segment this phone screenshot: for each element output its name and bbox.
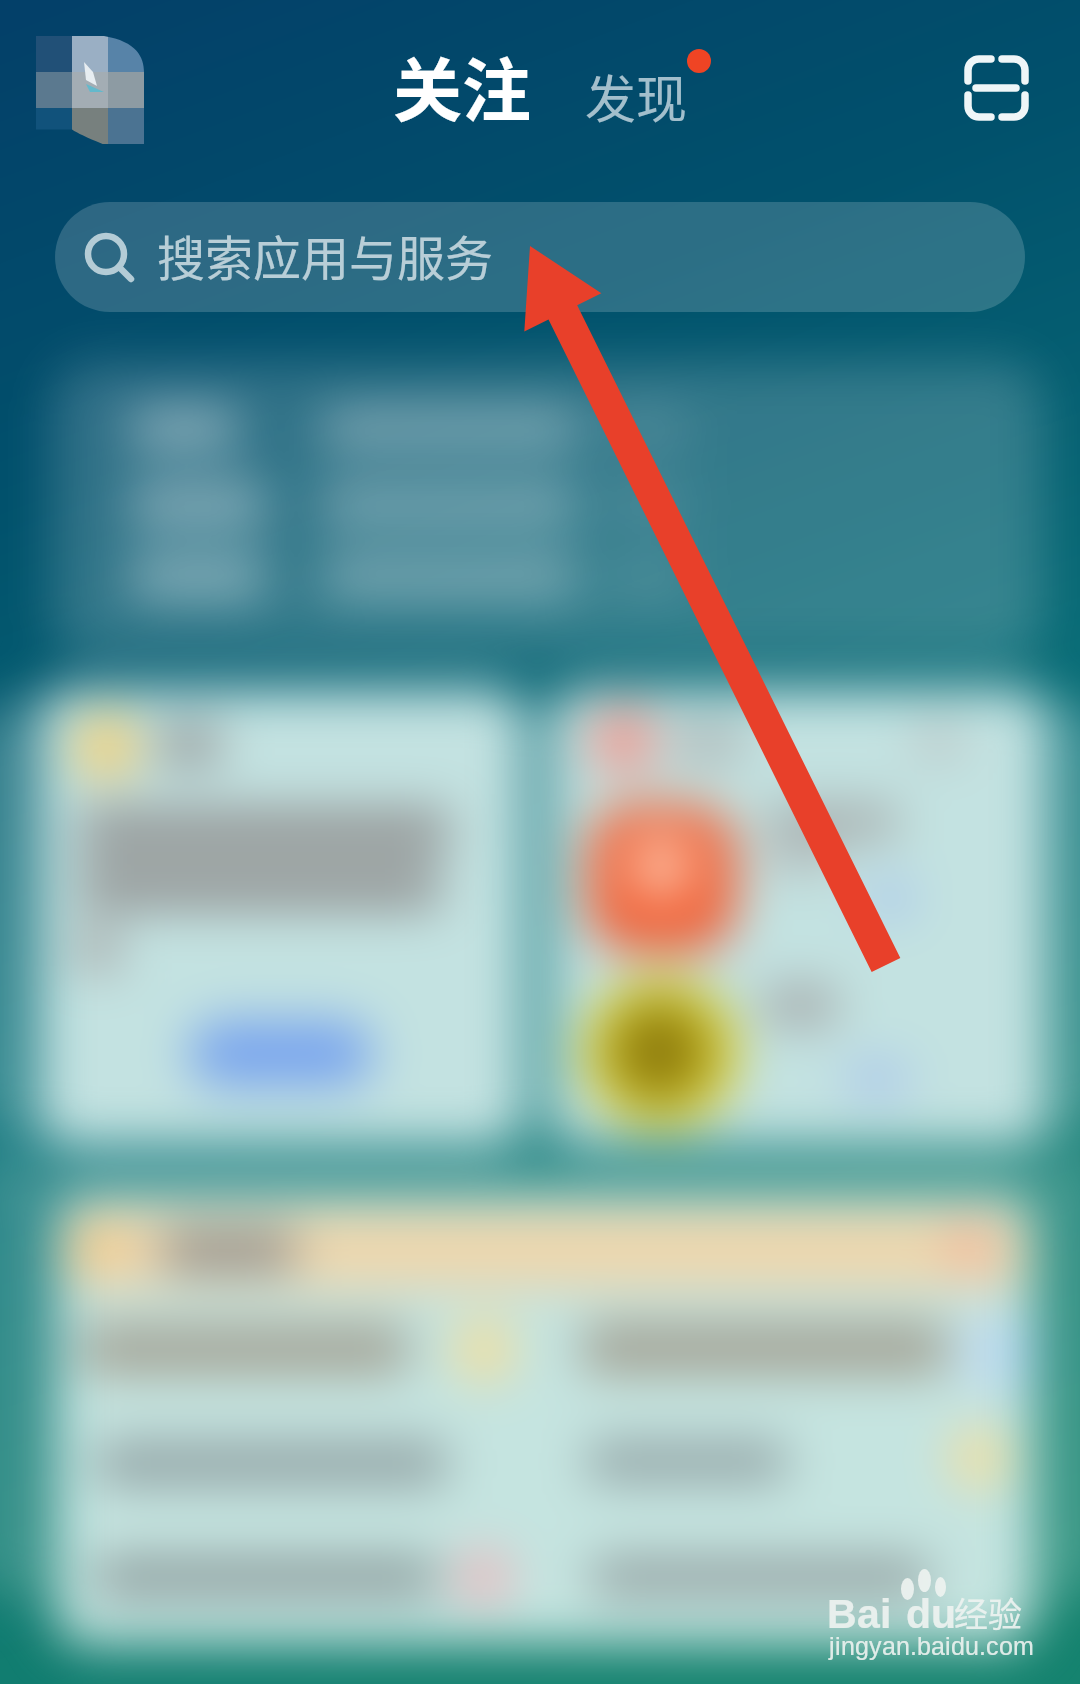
button[interactable]: Services bbox=[52, 362, 1042, 660]
button[interactable]: Ranking list bbox=[56, 1196, 1034, 1645]
button[interactable]: Feed card 2 bbox=[552, 688, 1046, 1146]
button[interactable]: Feed card 1 bbox=[40, 688, 522, 1146]
button[interactable]: 关注 bbox=[372, 40, 552, 136]
button[interactable]: Scan bbox=[944, 36, 1056, 144]
button[interactable]: Profile bbox=[24, 24, 156, 156]
button[interactable]: 发现 bbox=[566, 44, 726, 136]
button[interactable]: 搜索应用与服务 bbox=[55, 202, 1025, 312]
